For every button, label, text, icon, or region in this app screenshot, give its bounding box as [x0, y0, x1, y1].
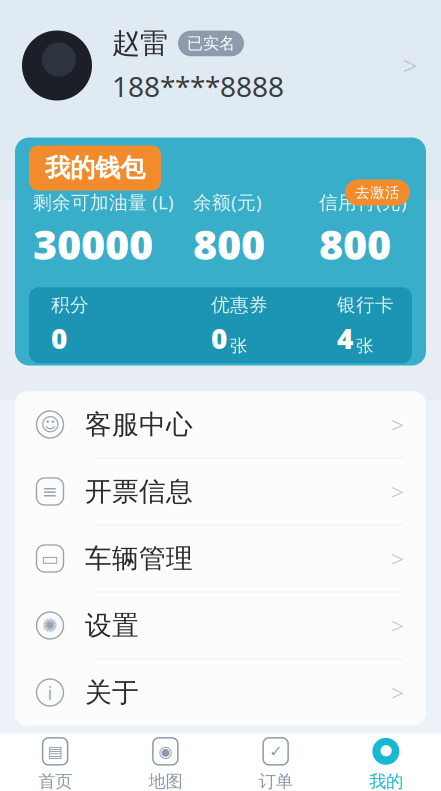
button[interactable]: ✺ [15, 592, 426, 659]
staticText: 我的 [369, 771, 403, 791]
staticText: 张 [356, 335, 373, 357]
staticText: 首页 [38, 771, 72, 791]
staticText: 银行卡 [337, 294, 394, 316]
staticText: 开票信息 [85, 475, 193, 508]
staticText: 4 [337, 320, 353, 357]
staticText: ≡ [42, 481, 58, 502]
staticText: 车辆管理 [85, 542, 193, 575]
staticText: ▤ [48, 742, 63, 760]
button[interactable]: ● [331, 737, 441, 791]
staticText: 地图 [148, 771, 182, 791]
staticText: 我的钱包 [45, 152, 145, 184]
staticText: ✺ [42, 615, 58, 636]
staticText: 800 [319, 216, 391, 271]
button[interactable]: ▭ [15, 525, 426, 592]
staticText: 信用付(元) [319, 189, 407, 214]
staticText: 800 [193, 216, 265, 271]
staticText: ✓ [269, 742, 282, 760]
staticText: 设置 [85, 609, 139, 642]
staticText: > [391, 409, 404, 439]
staticText: 优惠券 [211, 294, 268, 316]
staticText: 0 [211, 320, 227, 357]
staticText: ▭ [41, 548, 59, 569]
staticText: 0 [51, 320, 67, 357]
button[interactable]: ▤ [0, 737, 110, 791]
staticText: 188****8888 [112, 68, 284, 105]
button[interactable]: 去激活 [345, 179, 410, 205]
button[interactable]: ≡ [15, 458, 426, 525]
staticText: > [403, 49, 417, 82]
button[interactable]: i [15, 659, 426, 725]
staticText: 客服中心 [85, 408, 193, 441]
staticText: > [391, 543, 404, 573]
staticText: > [391, 610, 404, 640]
staticText: i [47, 680, 52, 705]
staticText: ◉ [158, 742, 172, 760]
staticText: 张 [230, 335, 247, 357]
button[interactable]: ✓ [220, 737, 331, 791]
staticText: 赵雷 [112, 26, 168, 61]
staticText: 30000 [33, 216, 153, 271]
staticText: ☺ [40, 414, 59, 435]
staticText: 已实名 [187, 34, 235, 53]
staticText: > [391, 476, 404, 506]
staticText: 去激活 [355, 183, 400, 201]
staticText: 订单 [259, 771, 293, 791]
button[interactable]: 赵雷 [0, 0, 441, 135]
staticText: ● [379, 741, 392, 758]
button[interactable]: ☺ [15, 391, 426, 458]
staticText: > [391, 677, 404, 707]
staticText: 剩余可加油量 (L) [33, 189, 174, 214]
staticText: 余额(元) [193, 189, 262, 214]
staticText: 积分 [51, 294, 89, 316]
button[interactable]: ◉ [110, 737, 220, 791]
staticText: 关于 [85, 676, 139, 709]
